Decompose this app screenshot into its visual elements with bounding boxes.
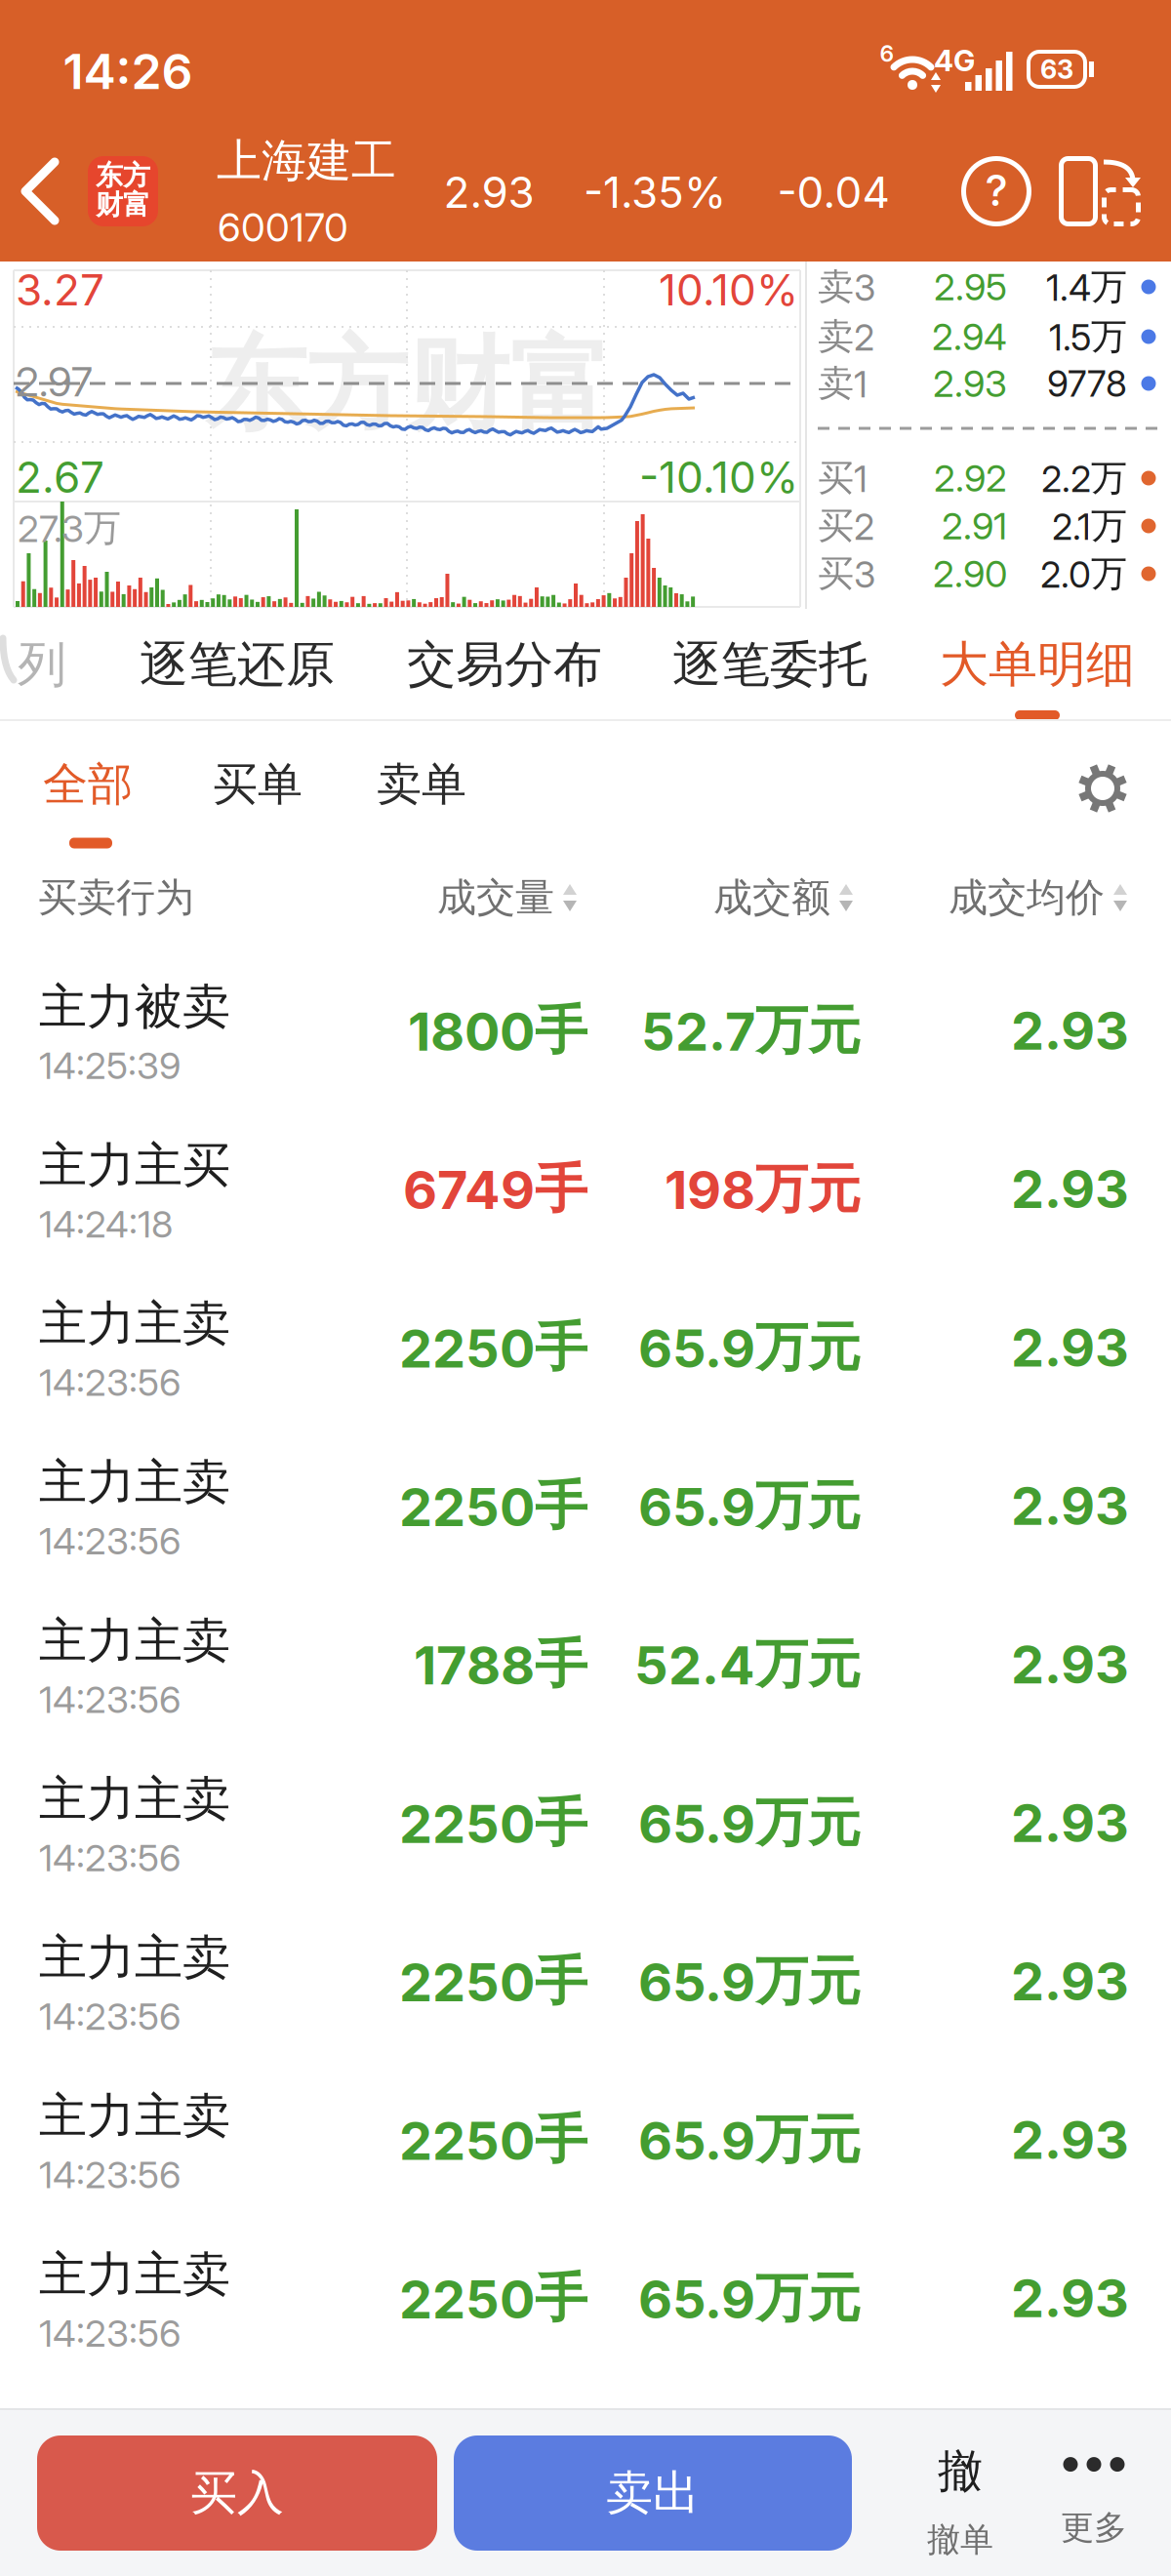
staticText: 主力主买 xyxy=(39,1135,230,1195)
staticText: 14:23:56 xyxy=(39,2311,181,2356)
staticText: 东方财富 xyxy=(205,322,611,449)
staticText: -1.35% xyxy=(584,166,726,218)
staticText: 2.94 xyxy=(932,314,1007,359)
staticText: 东方 xyxy=(96,158,150,193)
staticText: 2.93 xyxy=(1011,1632,1129,1696)
button[interactable]: 成交额 xyxy=(713,873,854,922)
staticText: 2.0万 xyxy=(1040,551,1127,596)
staticText: 65.9万元 xyxy=(638,1473,861,1539)
staticText: 10.10% xyxy=(659,264,798,316)
staticText: 2250手 xyxy=(399,2106,587,2173)
button[interactable]: 逐笔委托 xyxy=(640,611,900,718)
staticText: 6749手 xyxy=(403,1156,587,1222)
staticText: 65.9万元 xyxy=(638,1948,861,2014)
button[interactable]: 逐笔还原 xyxy=(107,611,367,718)
staticText: 2.95 xyxy=(934,264,1007,309)
staticText: 52.7万元 xyxy=(641,997,861,1064)
button[interactable]: 交易分布 xyxy=(375,611,634,718)
button[interactable]: Help xyxy=(961,156,1031,226)
staticText: 2.93 xyxy=(933,361,1007,406)
staticText: 主力被卖 xyxy=(39,977,230,1037)
staticText: 主力主卖 xyxy=(39,1294,230,1354)
staticText: 主力主卖 xyxy=(39,1452,230,1512)
staticText: 买单 xyxy=(213,756,303,813)
staticText: 逐笔还原 xyxy=(140,634,335,695)
staticText: 14:24:18 xyxy=(39,1202,173,1246)
staticText: 2250手 xyxy=(399,1790,587,1856)
staticText: 2.93 xyxy=(1011,2108,1129,2171)
staticText: 14:23:56 xyxy=(39,1360,181,1405)
button[interactable]: 成交量 xyxy=(437,873,578,922)
staticText: 主力主卖 xyxy=(39,1928,230,1988)
staticText: 2.93 xyxy=(1011,1791,1129,1855)
staticText: 2.92 xyxy=(934,456,1007,501)
staticText: 逐笔委托 xyxy=(672,634,868,695)
staticText: 1800手 xyxy=(408,997,587,1064)
staticText: 2.93 xyxy=(1011,1474,1129,1538)
staticText: 3.27 xyxy=(16,264,104,316)
staticText: 14:23:56 xyxy=(39,1994,181,2039)
staticText: 2.1万 xyxy=(1052,503,1127,549)
button[interactable]: 全部 xyxy=(24,726,151,843)
button[interactable]: 买单 xyxy=(194,726,321,843)
staticText: 6 xyxy=(880,40,894,67)
staticText: 撤 xyxy=(938,2443,983,2499)
staticText: 14:23:56 xyxy=(39,1518,181,1563)
staticText: 卖出 xyxy=(606,2464,700,2523)
staticText: 卖单 xyxy=(377,756,466,813)
button[interactable]: 卖单 xyxy=(358,726,485,843)
staticText: 1.4万 xyxy=(1046,264,1127,310)
staticText: 14:23:56 xyxy=(39,1677,181,1722)
staticText: 65.9万元 xyxy=(638,2265,861,2331)
staticText: 2.93 xyxy=(1011,998,1129,1062)
staticText: ? xyxy=(985,164,1008,216)
staticText: 主力主卖 xyxy=(39,1769,230,1829)
staticText: 14:26 xyxy=(63,42,193,101)
staticText: 14:25:39 xyxy=(39,1043,181,1088)
staticText: 2.93 xyxy=(1011,1157,1129,1221)
staticText: 交易分布 xyxy=(407,634,602,695)
staticText: 买入 xyxy=(190,2464,284,2523)
staticText: 全部 xyxy=(43,756,133,813)
staticText: 600170 xyxy=(218,204,348,251)
button[interactable]: 买入 xyxy=(37,2435,437,2551)
staticText: 2.90 xyxy=(933,551,1007,596)
staticText: 2250手 xyxy=(399,2265,587,2331)
button[interactable]: 大单明细 xyxy=(908,611,1167,718)
staticText: 买3 xyxy=(818,551,875,596)
staticText: -10.10% xyxy=(639,451,798,503)
staticText: 2250手 xyxy=(399,1314,587,1381)
staticText: 更多 xyxy=(1061,2507,1127,2549)
staticText: 14:23:56 xyxy=(39,1835,181,1880)
staticText: 卖3 xyxy=(818,264,875,310)
staticText: 财富 xyxy=(96,188,150,222)
staticText: -0.04 xyxy=(777,166,889,218)
button[interactable]: 撤 xyxy=(892,2429,1029,2575)
button[interactable]: 成交均价 xyxy=(949,873,1128,922)
staticText: 2.93 xyxy=(444,166,534,218)
staticText: 上海建工 xyxy=(217,133,396,189)
staticText: 2.93 xyxy=(1011,1949,1129,2013)
button[interactable]: Landscape mode xyxy=(1059,152,1143,230)
staticText: 65.9万元 xyxy=(638,2106,861,2173)
staticText: 主力主卖 xyxy=(39,2245,230,2305)
staticText: 2250手 xyxy=(399,1948,587,2014)
staticText: 2.2万 xyxy=(1041,455,1127,501)
staticText: 65.9万元 xyxy=(638,1790,861,1856)
staticText: 卖2 xyxy=(818,314,874,359)
staticText: 大单明细 xyxy=(940,634,1135,695)
staticText: 1.5万 xyxy=(1049,314,1127,359)
staticText: 52.4万元 xyxy=(634,1631,861,1697)
staticText: 撤单 xyxy=(927,2519,993,2561)
staticText: 2.93 xyxy=(1011,2266,1129,2330)
staticText: 成交额 xyxy=(713,873,830,922)
button[interactable]: Settings xyxy=(1075,761,1130,816)
staticText: 成交均价 xyxy=(949,873,1105,922)
staticText: 卖1 xyxy=(818,361,868,406)
staticText: 9778 xyxy=(1047,362,1127,405)
staticText: 2250手 xyxy=(399,1473,587,1539)
staticText: 主力主卖 xyxy=(39,1611,230,1671)
button[interactable]: 卖出 xyxy=(454,2435,852,2551)
button[interactable]: Back xyxy=(12,154,70,228)
button[interactable]: 更多 xyxy=(1026,2430,1162,2576)
